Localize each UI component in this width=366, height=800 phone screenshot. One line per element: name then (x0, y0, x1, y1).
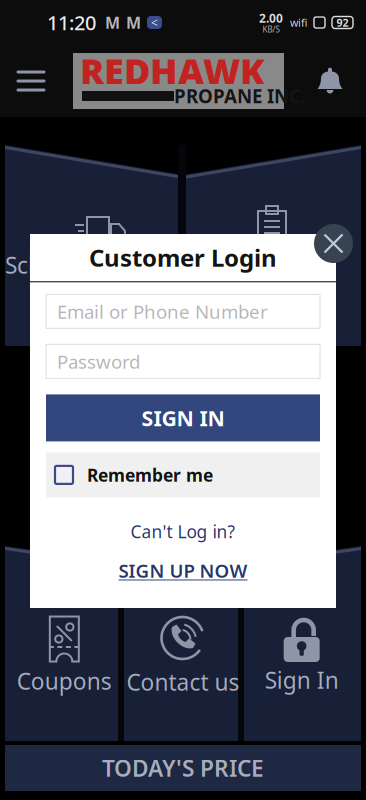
staticText: Email or Phone Number (57, 299, 268, 324)
staticText: M (105, 12, 120, 33)
button[interactable]: Contact us (124, 546, 242, 741)
button[interactable]: Can't Log in? (46, 520, 320, 542)
staticText: REDHAWK (80, 47, 265, 94)
button[interactable]: SIGN IN (46, 394, 320, 441)
staticText: 92 (336, 15, 348, 30)
button[interactable]: Schedule Delivery (5, 145, 183, 346)
staticText: SIGN IN (141, 404, 224, 432)
staticText: wifi (290, 15, 307, 30)
staticText: KB/S (262, 24, 279, 35)
staticText: Coupons (17, 666, 112, 696)
staticText: PROPANE INC. (174, 84, 306, 108)
staticText: Customer Login (89, 242, 277, 273)
button[interactable]: Remember me (46, 452, 320, 497)
button[interactable]: My Account (183, 145, 361, 346)
staticText: Sign In (265, 665, 339, 695)
staticText: < (151, 14, 158, 30)
button[interactable]: Close (314, 224, 353, 263)
staticText: My Account (209, 248, 334, 278)
staticText: Remember me (87, 463, 213, 486)
staticText: Schedule Delivery (5, 250, 196, 280)
staticText: 11:20 (47, 9, 96, 36)
staticText: SIGN UP NOW (118, 558, 247, 583)
staticText: TODAY'S PRICE (102, 753, 264, 783)
button[interactable]: Menu (0, 45, 62, 117)
staticText: 2.00 (259, 10, 283, 26)
staticText: Password (57, 349, 140, 374)
button[interactable]: Coupons (5, 546, 124, 741)
button[interactable]: SIGN UP NOW (46, 558, 320, 582)
button[interactable]: Notifications (303, 45, 357, 117)
staticText: Can't Log in? (130, 520, 235, 543)
button[interactable]: Sign In (242, 546, 361, 741)
staticText: Contact us (126, 667, 239, 697)
staticText: M (126, 12, 141, 33)
